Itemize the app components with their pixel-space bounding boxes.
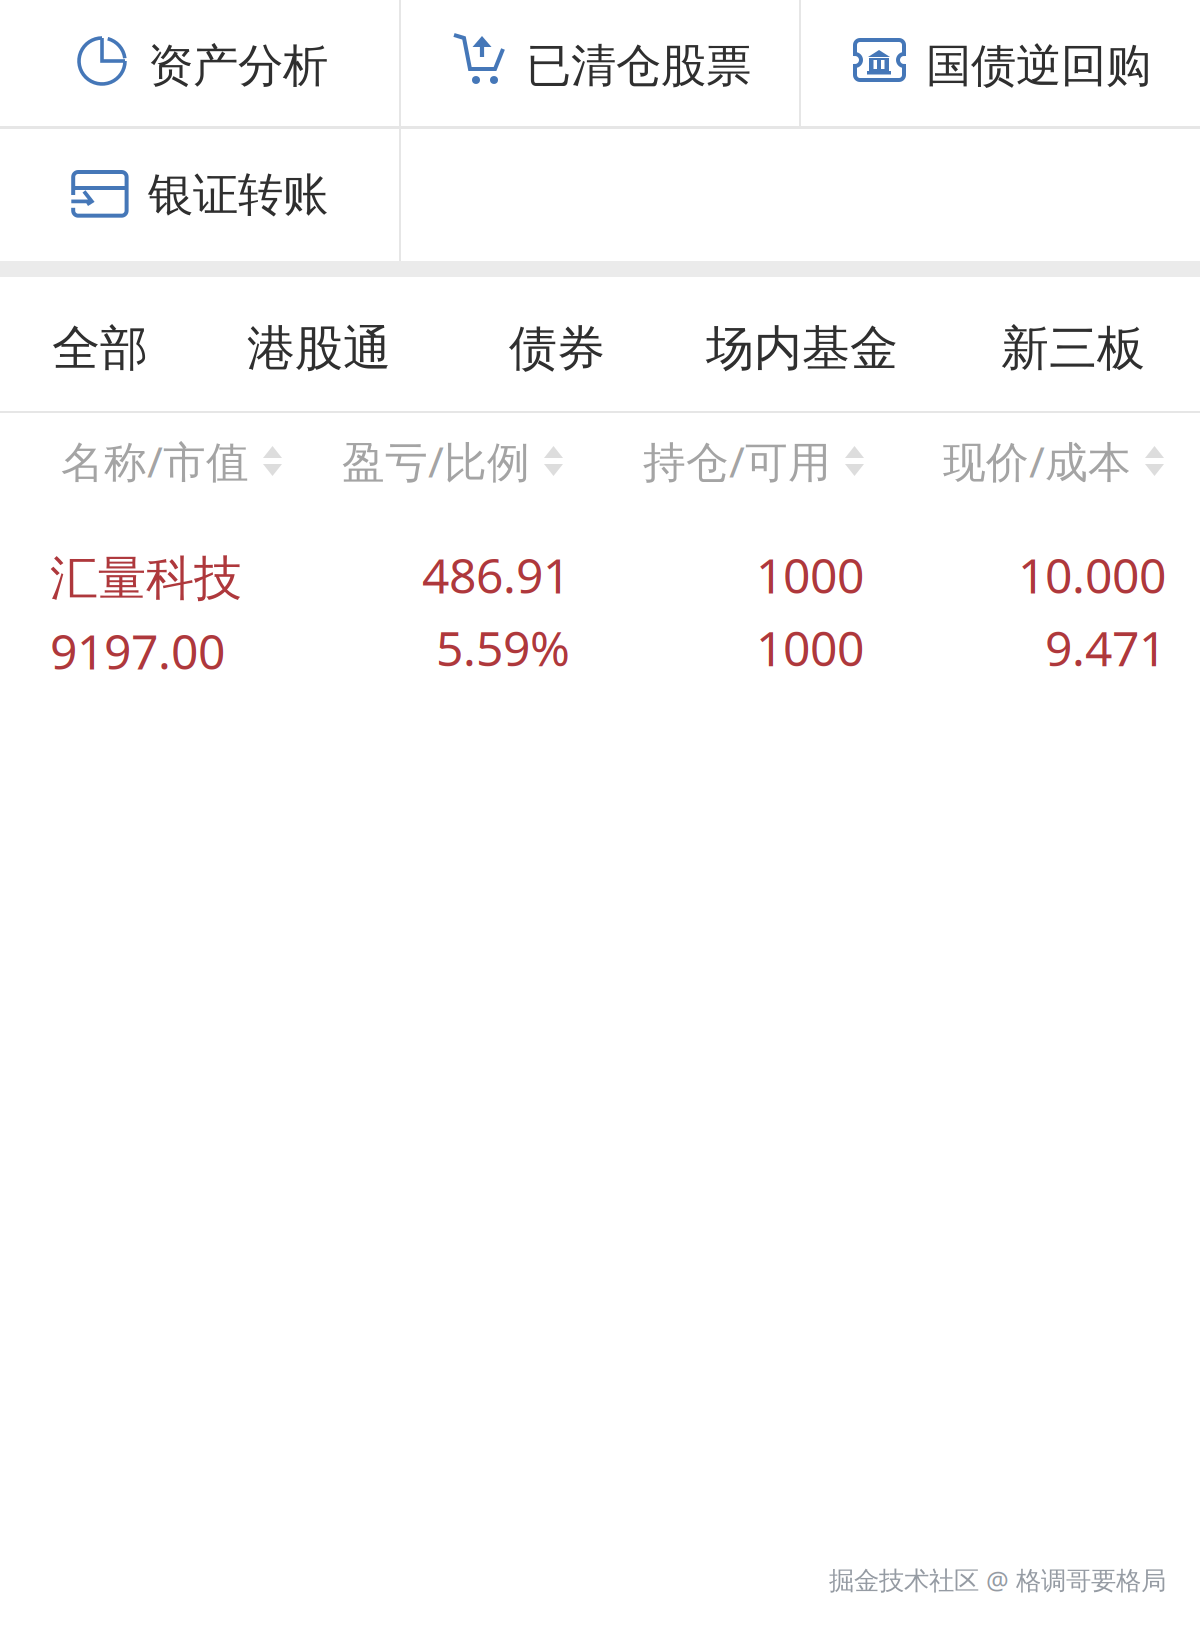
staticText: 港股通 bbox=[247, 319, 391, 378]
button[interactable]: 持仓/可用 bbox=[624, 433, 864, 489]
button[interactable]: 债券 bbox=[507, 301, 607, 396]
staticText: 486.91 bbox=[422, 543, 570, 607]
button[interactable]: 新三板 bbox=[999, 301, 1147, 396]
button[interactable]: 场内基金 bbox=[704, 301, 900, 396]
staticText: 持仓/可用 bbox=[643, 433, 831, 489]
staticText: 1000 bbox=[756, 543, 864, 607]
staticText: 现价/成本 bbox=[943, 433, 1131, 489]
button[interactable]: 盈亏/比例 bbox=[323, 433, 563, 489]
button[interactable]: 全部 bbox=[50, 301, 150, 396]
staticText: 10.000 bbox=[1018, 543, 1166, 607]
staticText: 汇量科技 bbox=[50, 549, 242, 608]
button[interactable]: 现价/成本 bbox=[924, 433, 1164, 489]
staticText: 资产分析 bbox=[148, 38, 328, 94]
button[interactable]: 银证转账 bbox=[0, 129, 399, 256]
staticText: 国债逆回购 bbox=[926, 38, 1151, 94]
staticText: 5.59% bbox=[436, 616, 570, 679]
staticText: 掘金技术社区 @ 格调哥要格局 bbox=[829, 1563, 1166, 1597]
staticText: 债券 bbox=[509, 319, 605, 378]
staticText: 1000 bbox=[756, 616, 864, 679]
button[interactable]: 资产分析 bbox=[0, 0, 399, 127]
button[interactable]: 港股通 bbox=[245, 301, 393, 396]
staticText: 新三板 bbox=[1001, 319, 1145, 378]
button[interactable]: 汇量科技 bbox=[0, 520, 1200, 700]
staticText: 9.471 bbox=[1045, 616, 1166, 679]
staticText: 已清仓股票 bbox=[526, 38, 751, 94]
button[interactable]: 名称/市值 bbox=[42, 433, 282, 489]
staticText: 全部 bbox=[52, 319, 148, 378]
button[interactable]: 已清仓股票 bbox=[402, 0, 801, 127]
button[interactable]: 国债逆回购 bbox=[802, 0, 1200, 127]
staticText: 盈亏/比例 bbox=[342, 433, 530, 489]
staticText: 银证转账 bbox=[148, 167, 328, 223]
staticText: 场内基金 bbox=[706, 319, 898, 378]
staticText: 9197.00 bbox=[50, 619, 225, 683]
staticText: 名称/市值 bbox=[61, 433, 249, 489]
